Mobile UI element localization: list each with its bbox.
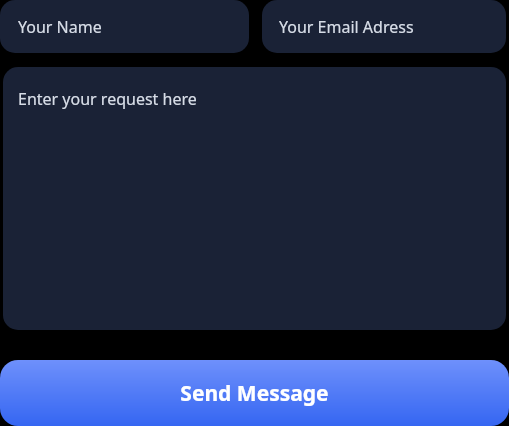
button[interactable]: Send Message [0,360,509,426]
button[interactable]: Enter your request here [3,67,506,330]
button[interactable]: Your Name [0,0,249,53]
staticText: Your Email Adress [279,16,414,38]
staticText: Your Name [18,16,102,38]
staticText: Send Message [180,379,329,408]
button[interactable]: Your Email Adress [262,0,506,53]
staticText: Enter your request here [18,88,197,110]
